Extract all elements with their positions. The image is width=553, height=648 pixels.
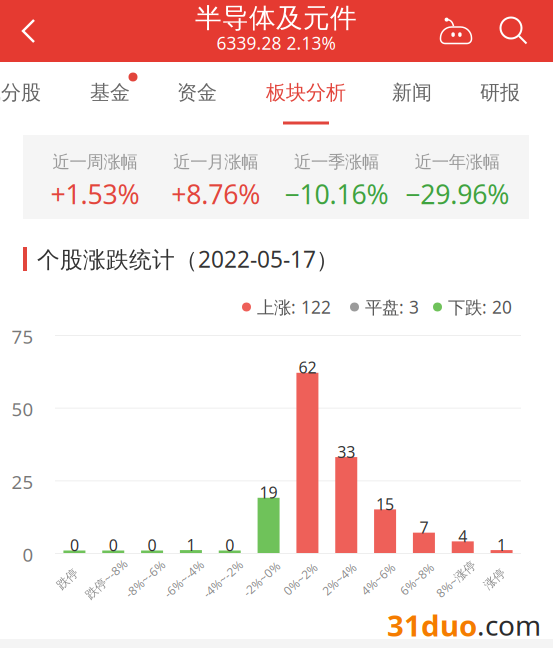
button[interactable]: 资金	[127, 62, 267, 124]
staticText: 0	[22, 542, 33, 567]
staticText: 8%~涨停	[432, 571, 480, 587]
staticText: 个股涨跌统计（2022-05-17）	[37, 244, 339, 274]
staticText: 0	[70, 534, 79, 556]
staticText: 7	[419, 517, 428, 538]
staticText: 0	[148, 534, 157, 556]
button[interactable]: 搜索	[486, 0, 542, 62]
staticText: 0	[109, 534, 118, 556]
button[interactable]: 智能助手	[428, 0, 484, 62]
staticText: 成分股	[0, 80, 41, 105]
staticText: 上涨: 122	[257, 295, 331, 318]
button[interactable]: 基金	[40, 62, 180, 124]
staticText: 6%~8%	[396, 571, 437, 587]
staticText: 50	[11, 397, 33, 421]
button[interactable]: 成分股	[0, 62, 81, 124]
staticText: -8%~-6%	[121, 571, 170, 587]
button[interactable]: 返回	[0, 0, 58, 62]
staticText: 31duo	[387, 605, 477, 644]
staticText: -2%~0%	[239, 571, 284, 587]
staticText: 近一月涨幅	[173, 151, 258, 173]
staticText: 涨停	[483, 572, 507, 586]
staticText: 板块分析	[266, 80, 346, 105]
staticText: 研报	[480, 80, 520, 105]
staticText: 近一年涨幅	[415, 151, 500, 173]
staticText: 2%~4%	[319, 571, 360, 587]
staticText: 资金	[177, 80, 217, 105]
staticText: 75	[11, 324, 33, 349]
staticText: 近一周涨幅	[52, 151, 137, 173]
staticText: −29.96%	[405, 176, 509, 212]
staticText: 基金	[90, 80, 130, 105]
staticText: 4	[458, 525, 467, 547]
staticText: −10.16%	[284, 176, 388, 212]
staticText: +8.76%	[171, 176, 260, 212]
staticText: 19	[260, 482, 278, 503]
staticText: 25	[11, 469, 33, 494]
staticText: 1	[186, 534, 195, 555]
staticText: 6339.28 2.13%	[216, 31, 335, 54]
button[interactable]: 新闻	[342, 62, 482, 124]
button[interactable]: 研报	[430, 62, 553, 124]
staticText: 33	[337, 441, 355, 462]
staticText: 1	[497, 534, 506, 555]
staticText: 新闻	[392, 80, 432, 105]
staticText: 跌停	[55, 572, 79, 586]
staticText: 0	[225, 534, 234, 556]
staticText: 近一季涨幅	[294, 151, 379, 173]
staticText: 0%~2%	[280, 571, 321, 587]
button[interactable]: 板块分析	[236, 62, 376, 124]
staticText: 4%~6%	[358, 571, 399, 587]
staticText: 62	[298, 357, 316, 378]
staticText: -4%~-2%	[198, 571, 247, 587]
staticText: 平盘: 3	[365, 295, 419, 318]
staticText: .com	[477, 606, 541, 644]
staticText: +1.53%	[50, 176, 139, 212]
staticText: 半导体及元件	[195, 2, 357, 34]
staticText: 跌停~-8%	[80, 571, 132, 587]
staticText: 15	[376, 493, 394, 515]
staticText: -6%~-4%	[159, 571, 208, 587]
staticText: 下跌: 20	[448, 295, 512, 318]
